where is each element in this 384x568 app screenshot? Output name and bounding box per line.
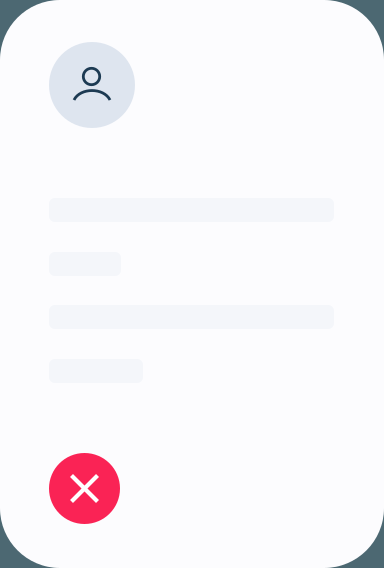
button[interactable]: Close [49,453,120,524]
